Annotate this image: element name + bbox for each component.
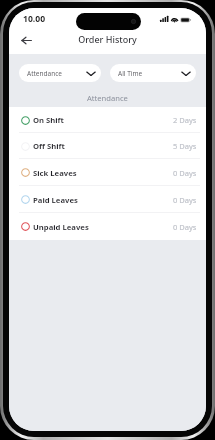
staticText: Off Shift (33, 141, 65, 151)
staticText: 0 Days (173, 195, 197, 205)
staticText: All Time (118, 69, 143, 78)
button[interactable]: Paid Leaves (9, 186, 206, 213)
staticText: Sick Leaves (33, 168, 77, 178)
staticText: 10.00 (23, 13, 46, 25)
staticText: Attendance (87, 93, 128, 103)
staticText: Order History (78, 33, 137, 45)
staticText: 0 Days (173, 222, 197, 232)
button[interactable]: All Time (110, 64, 196, 82)
staticText: Unpaid Leaves (33, 222, 89, 232)
button[interactable]: Attendance (19, 64, 101, 82)
staticText: 0 Days (173, 168, 197, 178)
staticText: On Shift (33, 115, 64, 125)
staticText: Paid Leaves (33, 195, 78, 205)
staticText: 2 Days (173, 115, 197, 125)
staticText: 5 Days (173, 141, 197, 151)
button[interactable]: Unpaid Leaves (9, 213, 206, 240)
button[interactable]: Back (17, 31, 35, 49)
staticText: Attendance (27, 69, 62, 78)
button[interactable]: On Shift (9, 107, 206, 133)
button[interactable]: Sick Leaves (9, 159, 206, 186)
button[interactable]: Off Shift (9, 133, 206, 159)
